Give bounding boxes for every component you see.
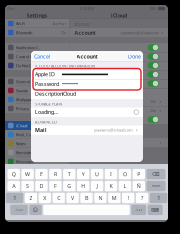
staticText: 2:28 AM: [79, 6, 94, 11]
staticText: ⌫: [152, 171, 160, 177]
staticText: On: [150, 108, 155, 113]
button[interactable]: ⌫: [146, 169, 165, 179]
button[interactable]: [5, 5, 69, 222]
button[interactable]: J: [91, 181, 103, 191]
staticText: Apple ID: [35, 71, 55, 78]
button[interactable]: K: [105, 181, 117, 191]
button[interactable]: ⇧: [6, 193, 23, 203]
button[interactable]: !: [122, 193, 134, 203]
button[interactable]: Cancel: [34, 51, 52, 62]
button[interactable]: N: [94, 193, 107, 203]
staticText: On: [61, 30, 66, 35]
button[interactable]: [5, 5, 69, 222]
staticText: Privacy: [16, 106, 29, 111]
button[interactable]: [5, 5, 69, 222]
staticText: M: [112, 194, 117, 201]
button[interactable]: [5, 5, 69, 222]
button[interactable]: ?: [136, 193, 148, 203]
button[interactable]: R: [49, 169, 62, 179]
staticText: Password: [35, 80, 59, 88]
button[interactable]: Y: [77, 169, 89, 179]
staticText: 78%: [149, 6, 156, 11]
button[interactable]: I: [105, 169, 117, 179]
staticText: return: [151, 184, 160, 188]
staticText: Y: [82, 171, 85, 178]
staticText: Cancel: [34, 53, 50, 60]
staticText: ⇧: [157, 195, 161, 201]
staticText: !: [128, 194, 129, 201]
staticText: Z: [29, 194, 32, 201]
staticText: E: [40, 171, 43, 178]
button[interactable]: ⌨: [148, 205, 163, 215]
button[interactable]: P: [133, 169, 145, 179]
staticText: S: [26, 182, 29, 190]
button[interactable]: T: [63, 169, 75, 179]
button[interactable]: B: [80, 193, 93, 203]
button[interactable]: L: [119, 181, 131, 191]
button[interactable]: A: [7, 181, 20, 191]
button[interactable]: W: [21, 169, 34, 179]
button[interactable]: [5, 5, 69, 222]
staticText: Q: [12, 171, 16, 178]
button[interactable]: O: [119, 169, 131, 179]
button[interactable]: M: [108, 193, 120, 203]
staticText: Locate your iPad: [74, 125, 102, 131]
staticText: K: [109, 182, 112, 190]
staticText: D: [39, 182, 43, 190]
button[interactable]: D: [35, 181, 48, 191]
button[interactable]: Q: [7, 169, 20, 179]
button[interactable]: S: [21, 181, 34, 191]
button[interactable]: return: [146, 181, 165, 191]
staticText: youname@icloud.com: [94, 127, 133, 133]
staticText: Wallpaper: [16, 97, 34, 102]
staticText: Ñ: [137, 182, 141, 190]
staticText: iCloud: [16, 123, 27, 128]
staticText: L: [123, 182, 126, 190]
button[interactable]: U: [91, 169, 103, 179]
staticText: ADVANCED: [35, 119, 57, 125]
button[interactable]: [5, 5, 69, 222]
button[interactable]: X: [39, 193, 51, 203]
staticText: .?123: [135, 208, 143, 212]
button[interactable]: .?123: [10, 205, 28, 215]
button[interactable]: [5, 5, 69, 222]
button[interactable]: [5, 5, 69, 222]
staticText: J: [97, 182, 98, 190]
staticText: ›: [159, 107, 161, 114]
staticText: Notification C.: [16, 45, 40, 50]
staticText: .?123: [15, 208, 23, 212]
staticText: iCLOUD ACCOUNT INFORMATION: [35, 63, 95, 69]
button[interactable]: [5, 5, 69, 222]
button[interactable]: [5, 5, 69, 222]
button[interactable]: [5, 5, 69, 222]
staticText: ›: [161, 29, 163, 36]
button[interactable]: .?123: [131, 205, 146, 215]
staticText: without signing in.: [74, 129, 104, 135]
staticText: On: [150, 99, 155, 104]
staticText: Mail, Contacts: [16, 132, 41, 137]
button[interactable]: F: [49, 181, 62, 191]
staticText: iPad: [7, 6, 14, 11]
staticText: R: [54, 171, 57, 178]
staticText: V: [71, 194, 74, 201]
button[interactable]: G: [63, 181, 75, 191]
staticText: Bluetooth: [16, 30, 32, 35]
button[interactable]: ☺: [29, 205, 42, 215]
button[interactable]: [5, 5, 69, 222]
button[interactable]: Done: [125, 51, 141, 62]
button[interactable]: [5, 5, 69, 222]
staticText: Done: [128, 53, 141, 60]
staticText: U: [95, 171, 99, 178]
button[interactable]: V: [66, 193, 79, 203]
staticText: X: [43, 194, 46, 201]
button[interactable]: C: [52, 193, 65, 203]
staticText: Description: [35, 90, 63, 97]
button[interactable]: [5, 5, 69, 222]
staticText: T: [68, 171, 71, 178]
button[interactable]: Ñ: [133, 181, 145, 191]
button[interactable]: E: [35, 169, 48, 179]
button[interactable]: Z: [25, 193, 37, 203]
button[interactable]: H: [77, 181, 89, 191]
button[interactable]: ⇧: [150, 193, 167, 203]
